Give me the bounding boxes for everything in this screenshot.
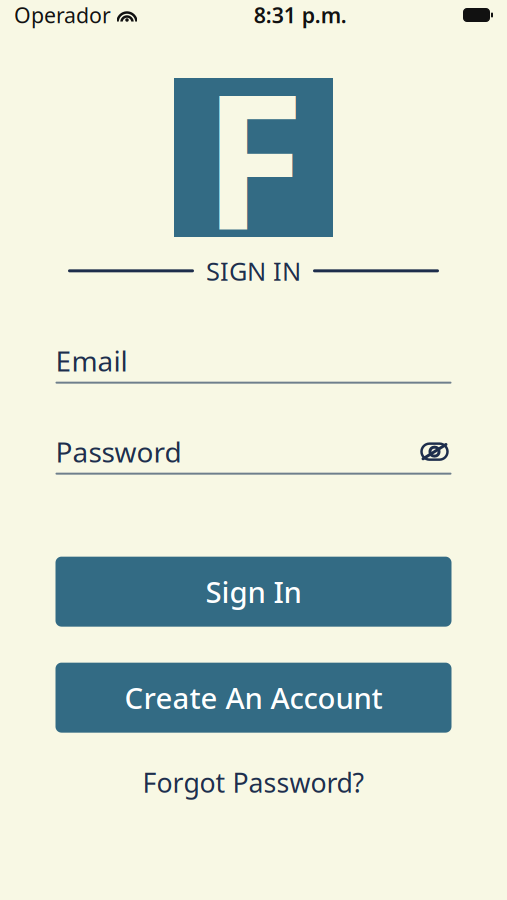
- staticText: Forgot Password?: [142, 765, 364, 800]
- button[interactable]: Show password: [417, 440, 451, 464]
- staticText: 8:31 p.m.: [254, 1, 347, 29]
- button[interactable]: Forgot Password?: [132, 759, 374, 806]
- staticText: Create An Account: [124, 678, 382, 717]
- button[interactable]: Create An Account: [55, 663, 451, 733]
- staticText: Sign In: [205, 572, 301, 611]
- staticText: SIGN IN: [206, 254, 301, 288]
- button[interactable]: Sign In: [55, 557, 451, 627]
- staticText: Operador: [14, 1, 111, 29]
- staticText: Password: [55, 433, 181, 470]
- staticText: Email: [55, 342, 127, 379]
- staticText: F: [202, 34, 304, 281]
